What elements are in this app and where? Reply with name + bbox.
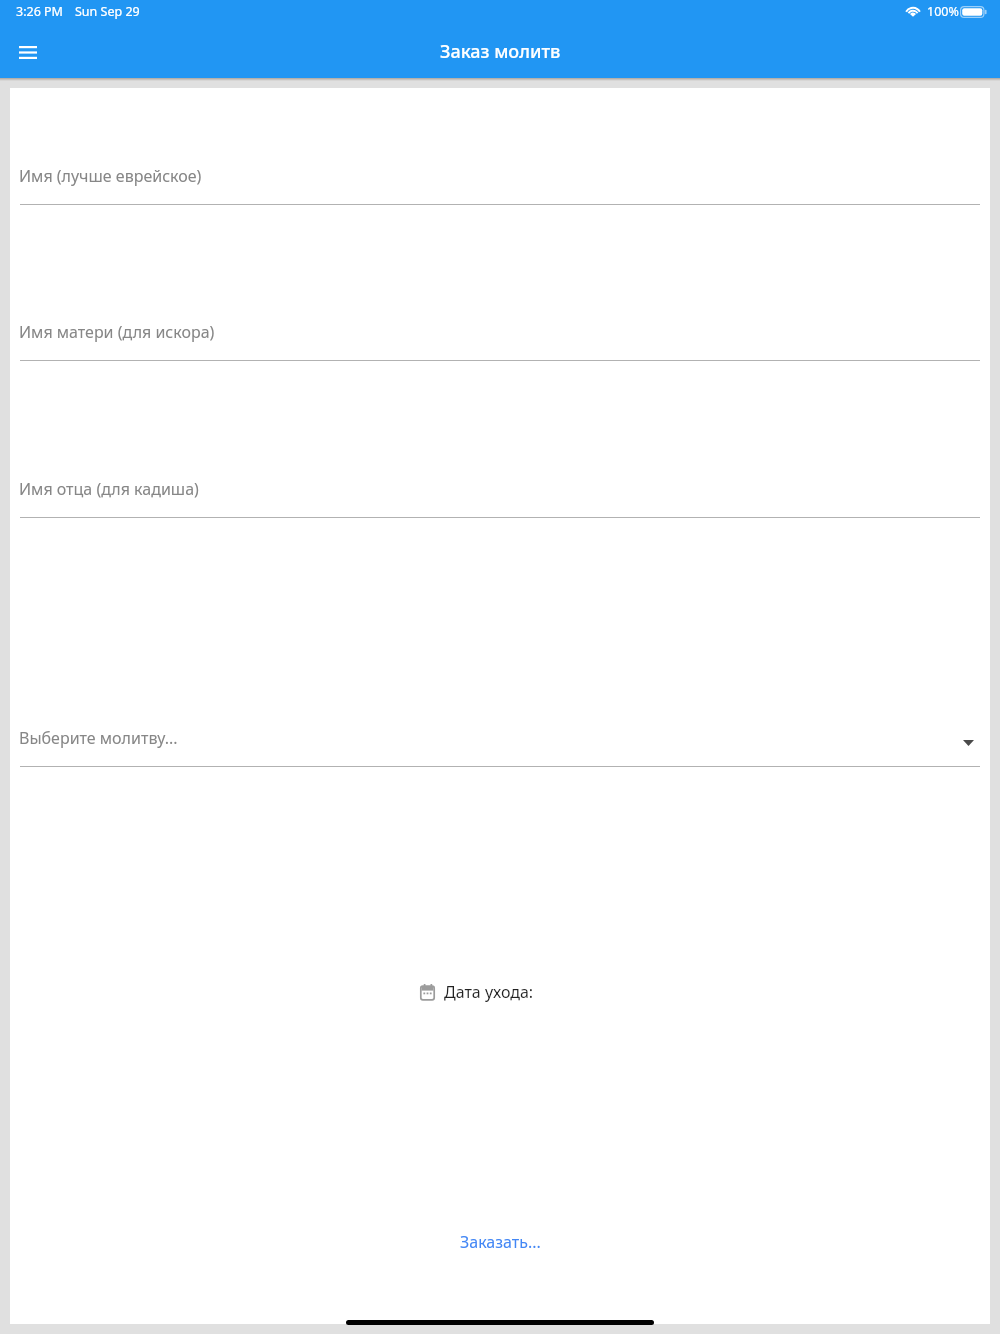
staticText: Имя отца (для кадиша): [19, 478, 199, 500]
staticText: Sun Sep 29: [75, 3, 140, 20]
staticText: 100%: [927, 3, 959, 20]
staticText: Имя матери (для искора): [19, 321, 215, 343]
button[interactable]: Выберите молитву...: [20, 715, 980, 773]
staticText: 3:26 PM: [16, 3, 63, 20]
staticText: Заказ молитв: [440, 39, 561, 64]
staticText: Заказать...: [460, 1231, 541, 1253]
button[interactable]: Имя (лучше еврейское): [20, 153, 980, 211]
staticText: Имя (лучше еврейское): [19, 165, 202, 187]
button[interactable]: Open navigation menu: [10, 34, 46, 70]
staticText: Выберите молитву...: [19, 727, 178, 749]
staticText: Дата ухода:: [444, 981, 534, 1003]
button[interactable]: Заказать...: [442, 1219, 559, 1265]
button[interactable]: Имя матери (для искора): [20, 309, 980, 367]
button[interactable]: Имя отца (для кадиша): [20, 466, 980, 524]
button[interactable]: Дата ухода:: [408, 969, 546, 1015]
